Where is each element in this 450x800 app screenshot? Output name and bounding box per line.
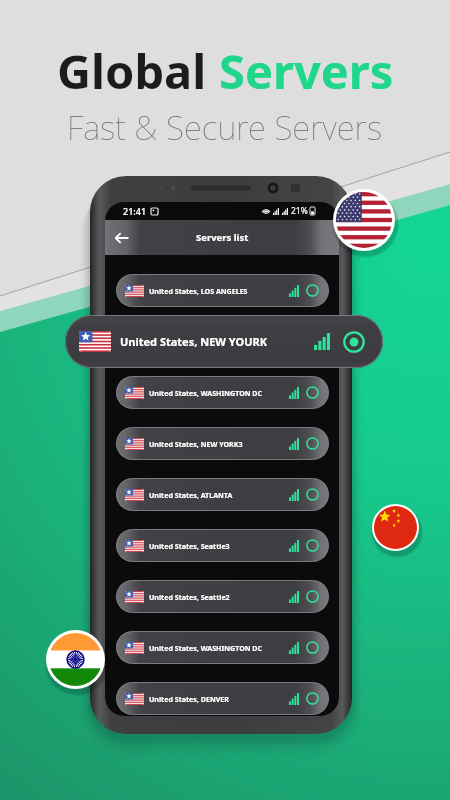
- staticText: 21:41: [123, 205, 147, 217]
- button[interactable]: United States, Seattle3: [116, 529, 329, 562]
- staticText: United States, Seattle2: [149, 592, 230, 602]
- button[interactable]: United States, LOS ANGELES: [116, 274, 329, 307]
- staticText: United States, WASHINGTON DC: [149, 643, 263, 653]
- button[interactable]: United States, DENVER: [116, 682, 329, 715]
- staticText: Fast & Secure Servers: [67, 105, 383, 150]
- button[interactable]: United States, WASHINGTON DC: [116, 631, 329, 664]
- staticText: 21%: [291, 205, 308, 217]
- staticText: United States, LOS ANGELES: [149, 286, 248, 296]
- staticText: United States, WASHINGTON DC: [149, 388, 263, 398]
- staticText: Servers: [219, 39, 394, 103]
- staticText: United States, ATLANTA: [149, 490, 233, 500]
- button[interactable]: [116, 325, 329, 358]
- staticText: United States, NEW YOURK: [120, 334, 267, 349]
- staticText: Servers list: [196, 231, 249, 244]
- button[interactable]: United States, NEW YORK3: [116, 427, 329, 460]
- staticText: United States, NEW YORK3: [149, 439, 243, 449]
- button[interactable]: United States, NEW YOURK: [65, 315, 383, 368]
- button[interactable]: United States, ATLANTA: [116, 478, 329, 511]
- button[interactable]: United States, WASHINGTON DC: [116, 376, 329, 409]
- button[interactable]: United States, Seattle2: [116, 580, 329, 613]
- staticText: United States, DENVER: [149, 694, 229, 704]
- staticText: Global: [57, 39, 219, 103]
- button[interactable]: Back: [114, 230, 130, 246]
- staticText: United States, Seattle3: [149, 541, 230, 551]
